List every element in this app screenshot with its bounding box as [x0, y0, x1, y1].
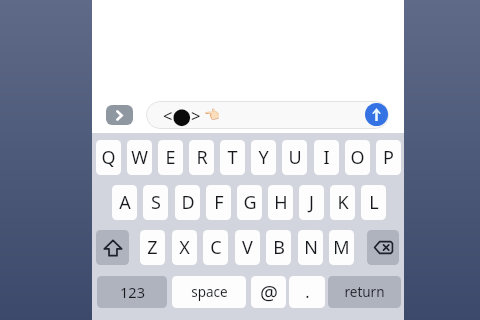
- staticText: X: [179, 235, 190, 260]
- button[interactable]: Send: [365, 103, 388, 126]
- staticText: L: [369, 190, 379, 215]
- button[interactable]: I: [314, 140, 339, 175]
- button[interactable]: P: [376, 140, 401, 175]
- button[interactable]: J: [299, 185, 324, 220]
- staticText: K: [337, 190, 349, 215]
- button[interactable]: H: [268, 185, 293, 220]
- button[interactable]: Backspace: [367, 230, 399, 265]
- staticText: G: [243, 190, 257, 215]
- button[interactable]: M: [329, 230, 354, 265]
- staticText: Q: [101, 145, 116, 170]
- staticText: return: [344, 283, 385, 301]
- staticText: P: [383, 145, 394, 170]
- staticText: O: [350, 145, 365, 170]
- staticText: 123: [120, 282, 145, 302]
- staticText: N: [304, 235, 318, 260]
- staticText: Z: [147, 235, 158, 260]
- button[interactable]: Show more options: [106, 105, 133, 125]
- button[interactable]: V: [235, 230, 260, 265]
- button[interactable]: E: [158, 140, 183, 175]
- staticText: J: [309, 190, 314, 215]
- button[interactable]: 123: [97, 276, 167, 308]
- button[interactable]: N: [298, 230, 323, 265]
- button[interactable]: Q: [96, 140, 121, 175]
- button[interactable]: R: [189, 140, 214, 175]
- staticText: B: [273, 235, 285, 260]
- staticText: I: [323, 145, 330, 170]
- staticText: <⬤>: [163, 104, 201, 126]
- staticText: space: [191, 283, 228, 301]
- staticText: D: [181, 190, 195, 215]
- button[interactable]: W: [127, 140, 152, 175]
- button[interactable]: X: [172, 230, 197, 265]
- staticText: .: [305, 281, 310, 303]
- button[interactable]: K: [330, 185, 355, 220]
- staticText: C: [210, 235, 222, 260]
- staticText: V: [242, 235, 253, 260]
- button[interactable]: L: [361, 185, 386, 220]
- staticText: S: [151, 190, 161, 215]
- button[interactable]: .: [289, 276, 325, 308]
- button[interactable]: Shift: [96, 230, 129, 265]
- button[interactable]: return: [328, 276, 401, 308]
- staticText: T: [227, 145, 238, 170]
- staticText: A: [119, 190, 131, 215]
- staticText: U: [288, 145, 302, 170]
- button[interactable]: U: [282, 140, 307, 175]
- button[interactable]: Y: [251, 140, 276, 175]
- button[interactable]: C: [203, 230, 228, 265]
- staticText: Y: [258, 145, 269, 170]
- staticText: F: [214, 190, 224, 215]
- button[interactable]: A: [112, 185, 137, 220]
- staticText: R: [196, 145, 208, 170]
- button[interactable]: S: [143, 185, 168, 220]
- button[interactable]: <⬤>: [146, 101, 389, 129]
- staticText: E: [165, 145, 176, 170]
- button[interactable]: T: [220, 140, 245, 175]
- staticText: W: [131, 145, 148, 170]
- button[interactable]: space: [172, 276, 246, 308]
- button[interactable]: G: [237, 185, 262, 220]
- button[interactable]: D: [175, 185, 200, 220]
- staticText: M: [333, 235, 350, 260]
- staticText: @: [260, 279, 278, 306]
- staticText: H: [274, 190, 288, 215]
- button[interactable]: F: [206, 185, 231, 220]
- button[interactable]: O: [345, 140, 370, 175]
- button[interactable]: B: [266, 230, 291, 265]
- staticText: 👈🏻: [204, 107, 221, 122]
- button[interactable]: Z: [140, 230, 165, 265]
- button[interactable]: @: [251, 276, 286, 308]
